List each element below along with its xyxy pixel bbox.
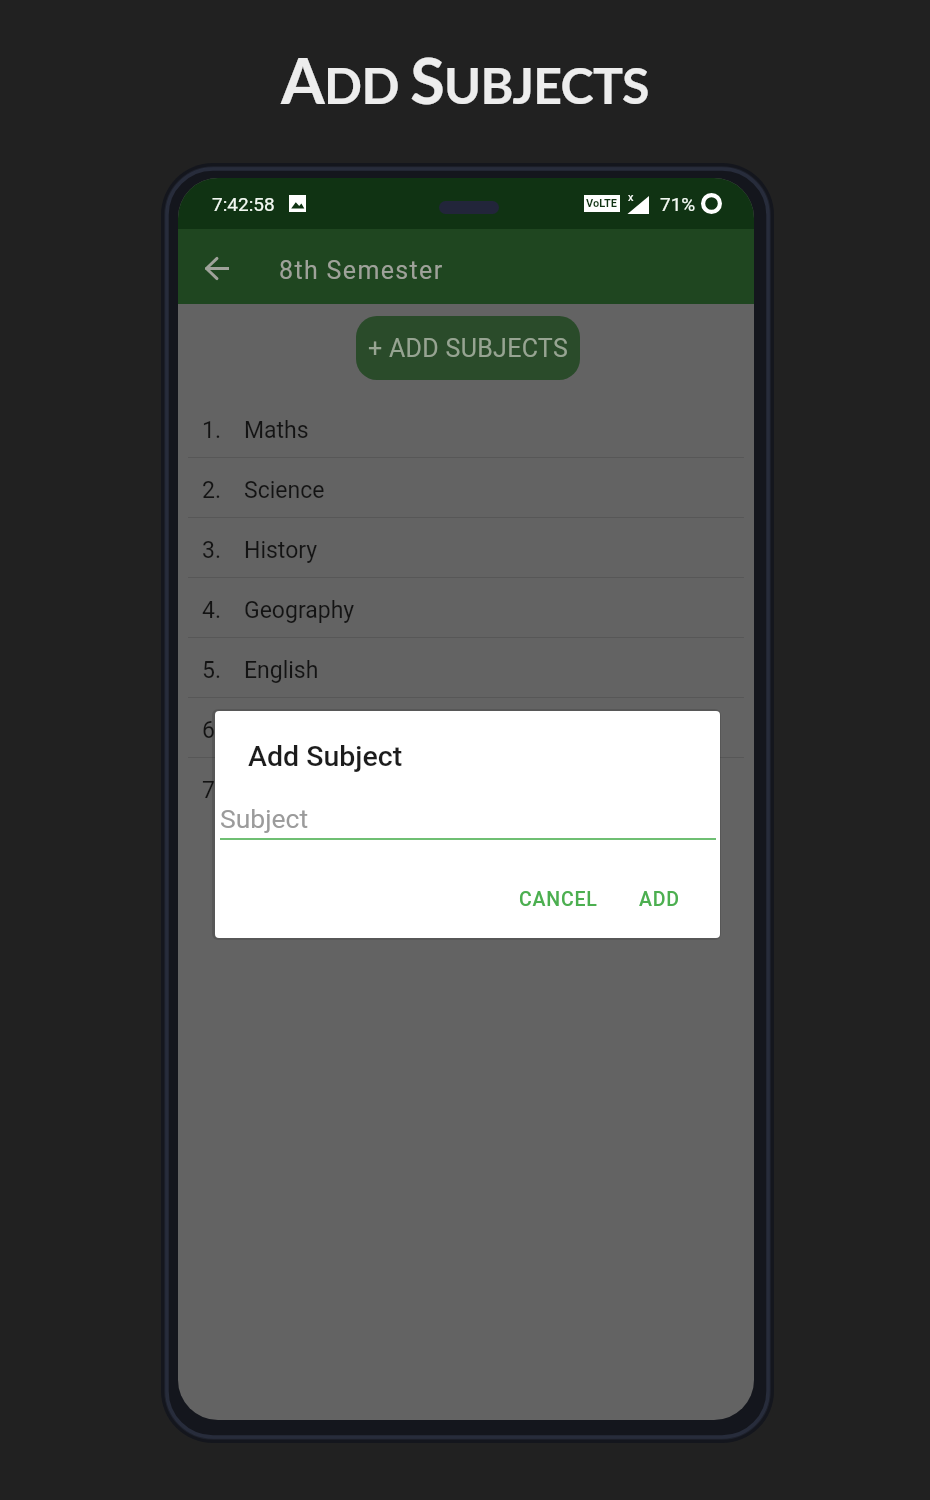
staticText: 6.	[202, 717, 221, 744]
staticText: 71%	[660, 193, 696, 215]
staticText: 3.	[202, 537, 221, 564]
staticText: 8th Semester	[279, 256, 444, 285]
staticText: Subject	[220, 803, 309, 834]
button[interactable]: Back	[193, 244, 241, 292]
staticText: 7:42:58	[212, 193, 275, 215]
staticText: 2.	[202, 477, 221, 504]
staticText: + ADD SUBJECTS	[368, 334, 569, 363]
button[interactable]: 2.	[178, 458, 754, 518]
staticText: 7.	[202, 777, 221, 804]
button[interactable]: 7.	[178, 758, 754, 818]
staticText: ADD	[639, 888, 680, 911]
staticText: Add Subject	[248, 740, 403, 773]
staticText: English	[244, 657, 319, 684]
button[interactable]: 4.	[178, 578, 754, 638]
staticText: 5.	[202, 657, 221, 684]
staticText: VoLTE	[586, 197, 618, 210]
button[interactable]: 6.	[178, 698, 754, 758]
button[interactable]: ADD	[625, 874, 694, 925]
staticText: ADD SUBJECTS	[281, 42, 649, 118]
staticText: x	[628, 191, 634, 204]
button[interactable]: + ADD SUBJECTS	[356, 316, 580, 380]
staticText: History	[244, 537, 318, 564]
staticText: 4.	[202, 597, 221, 624]
button[interactable]: 1.	[178, 398, 754, 458]
staticText: Science	[244, 477, 325, 504]
button[interactable]: 3.	[178, 518, 754, 578]
staticText: Geography	[244, 597, 355, 624]
button[interactable]: CANCEL	[505, 874, 612, 925]
staticText: Maths	[244, 417, 309, 444]
staticText: 1.	[202, 417, 221, 444]
button[interactable]: 5.	[178, 638, 754, 698]
staticText: CANCEL	[519, 888, 598, 911]
